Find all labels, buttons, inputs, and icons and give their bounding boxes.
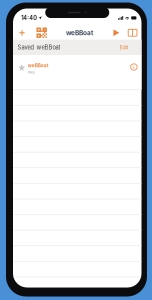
staticText: Web	[28, 70, 35, 74]
button[interactable]: Add	[18, 28, 26, 37]
staticText: Saved weBBoat	[17, 44, 60, 51]
button[interactable]: weBBoat	[13, 55, 141, 79]
button[interactable]: Scan QR code	[36, 27, 47, 38]
staticText: weBBoat	[28, 63, 49, 68]
button[interactable]: Guide	[127, 28, 138, 37]
staticText: weBBoat	[66, 29, 93, 37]
staticText: Edit	[119, 44, 128, 51]
staticText: 14:40	[21, 14, 37, 21]
button[interactable]: Edit	[119, 44, 141, 51]
button[interactable]: Play	[112, 28, 120, 37]
